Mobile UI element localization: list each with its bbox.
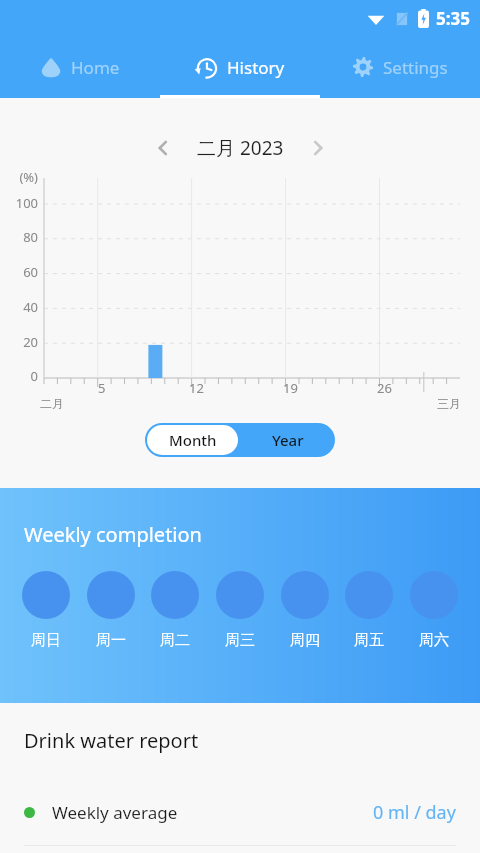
staticText: 周四 (290, 631, 320, 650)
staticText: 周日 (31, 631, 61, 650)
staticText: (%) (19, 168, 38, 186)
staticText: 0 ml / day (373, 800, 456, 825)
staticText: 二月 (40, 396, 64, 411)
staticText: 19 (283, 379, 298, 397)
staticText: 12 (189, 379, 204, 397)
button[interactable]: Home (0, 36, 160, 98)
staticText: 80 (23, 228, 38, 246)
staticText: Year (272, 430, 304, 450)
button[interactable]: Weekly average (0, 789, 480, 835)
button[interactable]: 周三 (212, 571, 268, 650)
button[interactable]: 周六 (406, 571, 462, 650)
staticText: Settings (383, 56, 448, 79)
button[interactable]: Settings (320, 36, 480, 98)
staticText: 周六 (419, 631, 449, 650)
button[interactable]: Year (240, 423, 335, 457)
button[interactable]: 周五 (341, 571, 397, 650)
staticText: 60 (23, 263, 38, 281)
staticText: 100 (15, 194, 38, 212)
staticText: 周一 (96, 631, 126, 650)
staticText: Month (169, 430, 217, 450)
staticText: 0 (30, 367, 38, 385)
staticText: Drink water report (24, 727, 199, 754)
staticText: 周二 (160, 631, 190, 650)
staticText: Weekly average (52, 801, 178, 824)
staticText: 40 (23, 298, 38, 316)
button[interactable]: Next month (300, 130, 336, 166)
button[interactable]: Month (147, 425, 238, 455)
staticText: Home (71, 56, 120, 79)
staticText: 二月 2023 (197, 135, 284, 161)
button[interactable]: 周一 (83, 571, 139, 650)
staticText: 三月 (437, 396, 461, 411)
staticText: Weekly completion (24, 521, 202, 548)
staticText: 周三 (225, 631, 255, 650)
staticText: 26 (377, 379, 392, 397)
button[interactable]: 周日 (18, 571, 74, 650)
button[interactable]: History (160, 36, 320, 98)
button[interactable]: 周四 (277, 571, 333, 650)
staticText: History (227, 56, 285, 79)
staticText: 20 (23, 333, 38, 351)
staticText: 5:35 (436, 7, 470, 30)
button[interactable]: Previous month (145, 130, 181, 166)
button[interactable]: 周二 (147, 571, 203, 650)
staticText: 5 (98, 379, 106, 397)
staticText: 周五 (354, 631, 384, 650)
